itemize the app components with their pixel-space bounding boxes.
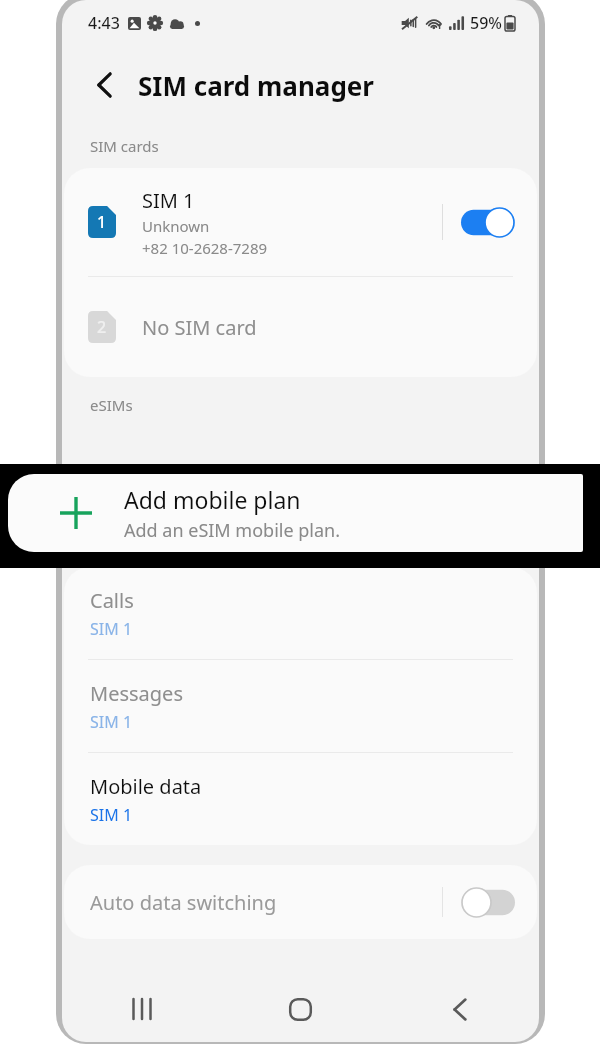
button[interactable]: Back <box>380 976 539 1042</box>
button[interactable]: Add mobile plan <box>8 474 583 552</box>
staticText: Auto data switching <box>90 889 442 916</box>
button[interactable]: Back <box>80 61 128 109</box>
staticText: SIM cards <box>90 136 159 156</box>
button[interactable]: Auto data switching <box>64 865 537 939</box>
staticText: 1 <box>97 211 107 233</box>
staticText: Add mobile plan <box>124 484 301 515</box>
staticText: Add an eSIM mobile plan. <box>124 518 341 543</box>
staticText: Messages <box>90 680 183 707</box>
button[interactable]: 2 <box>64 277 537 377</box>
staticText: eSIMs <box>90 395 133 415</box>
staticText: Unknown <box>142 216 210 236</box>
staticText: 2 <box>97 316 107 338</box>
staticText: Calls <box>90 587 134 614</box>
button[interactable]: Mobile data <box>64 753 537 845</box>
button[interactable]: Calls <box>64 567 537 659</box>
staticText: No SIM card <box>142 314 257 341</box>
staticText: 4:43 <box>88 12 120 34</box>
button[interactable]: SIM 1 enabled <box>457 203 519 242</box>
staticText: SIM 1 <box>90 711 133 733</box>
staticText: SIM 1 <box>142 187 195 214</box>
staticText: SIM card manager <box>138 68 374 103</box>
button[interactable]: Messages <box>64 660 537 752</box>
button[interactable]: Home <box>221 976 380 1042</box>
button[interactable]: Auto data switching off <box>457 883 519 922</box>
button[interactable]: 1 <box>64 168 537 276</box>
staticText: SIM 1 <box>90 804 133 826</box>
staticText: 59% <box>470 12 502 34</box>
staticText: +82 10-2628-7289 <box>142 238 268 258</box>
staticText: Mobile data <box>90 773 202 800</box>
button[interactable]: Recents <box>62 976 221 1042</box>
staticText: Preferred SIM card <box>90 535 223 555</box>
staticText: SIM 1 <box>90 618 133 640</box>
